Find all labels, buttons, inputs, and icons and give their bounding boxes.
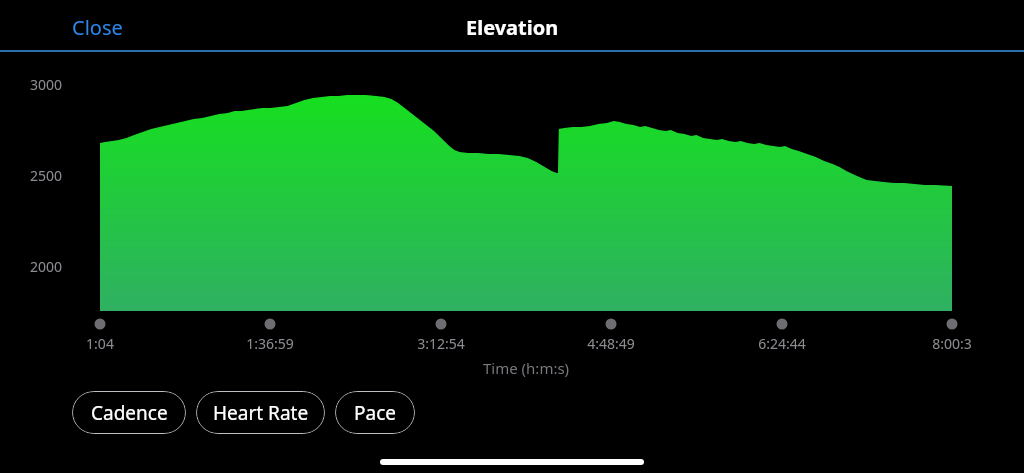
staticText: Heart Rate — [213, 400, 309, 426]
staticText: 8:00:3 — [902, 334, 1002, 473]
staticText: Close — [72, 14, 123, 41]
staticText: 2500 — [16, 166, 62, 473]
staticText: 1:36:59 — [220, 334, 320, 473]
staticText: 6:24:44 — [732, 334, 832, 473]
staticText: 2000 — [16, 257, 62, 473]
staticText: 4:48:49 — [561, 334, 661, 473]
staticText: 1:04 — [50, 334, 150, 473]
staticText: Cadence — [91, 400, 168, 426]
staticText: Pace — [354, 400, 396, 426]
button[interactable]: Close — [56, 8, 139, 47]
staticText: Time (h:m:s) — [483, 358, 570, 378]
button[interactable]: Cadence — [72, 391, 186, 434]
staticText: 3:12:54 — [391, 334, 491, 473]
button[interactable]: Pace — [335, 391, 415, 434]
staticText: Elevation — [466, 14, 559, 41]
staticText: 3000 — [16, 75, 62, 473]
button[interactable]: Heart Rate — [196, 391, 325, 434]
